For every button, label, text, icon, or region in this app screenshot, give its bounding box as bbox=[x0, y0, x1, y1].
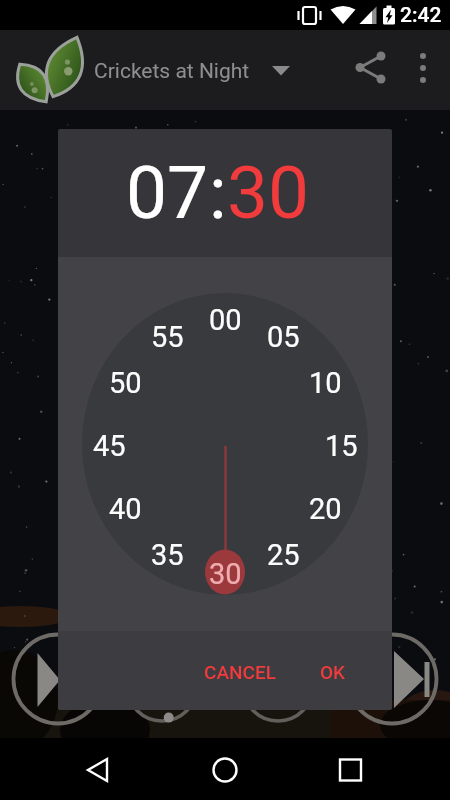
staticText: 20 bbox=[309, 492, 342, 526]
staticText: 10 bbox=[309, 366, 342, 400]
staticText: 15 bbox=[325, 429, 358, 463]
staticText: Crickets at Night bbox=[94, 59, 250, 84]
staticText: 55 bbox=[151, 320, 184, 354]
staticText: 05 bbox=[267, 320, 300, 354]
button[interactable]: CANCEL bbox=[188, 651, 292, 693]
staticText: 2:42 bbox=[400, 3, 442, 28]
staticText: 07 bbox=[126, 150, 209, 236]
button[interactable] bbox=[405, 48, 445, 93]
staticText: 45 bbox=[93, 429, 126, 463]
staticText: CANCEL bbox=[204, 661, 276, 683]
staticText: 35 bbox=[151, 538, 184, 572]
staticText: 50 bbox=[109, 366, 142, 400]
button[interactable] bbox=[195, 740, 255, 798]
staticText: 30 bbox=[227, 150, 310, 236]
button[interactable]: Crickets at Night bbox=[94, 50, 294, 92]
staticText: : bbox=[209, 150, 227, 236]
staticText: 40 bbox=[109, 492, 142, 526]
button[interactable]: OK bbox=[305, 651, 360, 693]
button[interactable] bbox=[345, 48, 395, 93]
button[interactable] bbox=[68, 740, 128, 798]
staticText: 00 bbox=[209, 303, 242, 337]
staticText: 25 bbox=[267, 538, 300, 572]
staticText: OK bbox=[320, 661, 346, 683]
staticText: 30 bbox=[209, 557, 242, 591]
button[interactable] bbox=[320, 740, 380, 798]
